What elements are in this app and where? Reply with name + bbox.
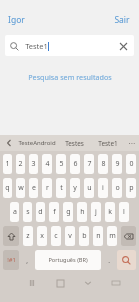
button[interactable]: w [16, 178, 25, 198]
button[interactable]: n [93, 226, 103, 246]
staticText: i [102, 183, 104, 193]
button[interactable]: t [56, 178, 66, 198]
button[interactable]: 8 [98, 154, 108, 174]
staticText: x [40, 231, 44, 241]
staticText: 9 [115, 159, 120, 169]
button[interactable]: Teste1 [91, 139, 125, 148]
button[interactable]: v [65, 226, 75, 246]
staticText: c [54, 231, 58, 241]
button[interactable]: g [63, 202, 73, 222]
button[interactable]: Previous suggestions [4, 138, 14, 148]
staticText: 1 [5, 159, 10, 169]
button[interactable]: 2 [16, 154, 25, 174]
button[interactable]: Recents [18, 274, 46, 292]
staticText: u [87, 183, 92, 193]
staticText: j [95, 207, 97, 217]
button[interactable]: o [112, 178, 122, 198]
button[interactable]: l [119, 202, 129, 222]
staticText: 8 [101, 159, 106, 169]
staticText: f [53, 207, 56, 217]
button[interactable]: Português (BR) [35, 250, 101, 270]
button[interactable]: Clear search [115, 38, 131, 54]
staticText: 7 [87, 159, 92, 169]
button[interactable]: q [3, 178, 12, 198]
button[interactable]: Teste1 [5, 35, 134, 56]
button[interactable]: a [10, 202, 19, 222]
staticText: v [68, 231, 72, 241]
button[interactable]: Backspace [121, 226, 136, 246]
button[interactable]: j [91, 202, 101, 222]
button[interactable]: p [126, 178, 136, 198]
staticText: , [26, 256, 28, 265]
button[interactable]: !#1 [3, 250, 19, 270]
staticText: m [109, 231, 116, 241]
button[interactable]: Sair [114, 14, 130, 26]
button[interactable]: f [49, 202, 59, 222]
staticText: 5 [59, 159, 64, 169]
button[interactable]: Hide keyboard [74, 274, 102, 292]
button[interactable]: Change keyboard [102, 274, 130, 292]
staticText: y [73, 183, 77, 193]
button[interactable]: Testes [57, 139, 91, 148]
staticText: . [108, 256, 110, 265]
staticText: Sair [114, 14, 130, 26]
staticText: e [32, 183, 36, 193]
staticText: Teste1 [25, 41, 48, 51]
button[interactable]: , [23, 250, 31, 270]
button[interactable]: 9 [112, 154, 122, 174]
button[interactable]: e [29, 178, 38, 198]
button[interactable]: 7 [84, 154, 94, 174]
button[interactable]: 5 [56, 154, 66, 174]
button[interactable]: y [70, 178, 80, 198]
staticText: 3 [31, 159, 36, 169]
button[interactable]: Search [117, 250, 136, 270]
staticText: Teste1 [98, 139, 118, 148]
button[interactable]: k [105, 202, 115, 222]
button[interactable]: i [98, 178, 108, 198]
button[interactable]: x [37, 226, 47, 246]
staticText: ⋯ [128, 139, 136, 148]
staticText: b [82, 231, 87, 241]
staticText: 2 [18, 159, 23, 169]
staticText: Português (BR) [48, 256, 88, 264]
button[interactable]: 6 [70, 154, 80, 174]
button[interactable]: Shift [3, 226, 19, 246]
staticText: o [115, 183, 120, 193]
button[interactable]: . [105, 250, 113, 270]
staticText: z [26, 231, 30, 241]
button[interactable]: 4 [42, 154, 52, 174]
button[interactable]: m [107, 226, 117, 246]
staticText: 0 [129, 159, 134, 169]
button[interactable]: Igor [8, 14, 25, 26]
staticText: h [80, 207, 85, 217]
staticText: a [13, 207, 17, 217]
button[interactable]: 3 [29, 154, 38, 174]
staticText: Pesquisa sem resultados [28, 72, 112, 82]
button[interactable]: u [84, 178, 94, 198]
staticText: Igor [8, 14, 25, 26]
staticText: 4 [45, 159, 50, 169]
staticText: r [46, 183, 49, 193]
staticText: d [38, 207, 43, 217]
button[interactable]: b [79, 226, 89, 246]
staticText: l [123, 207, 125, 217]
staticText: w [18, 183, 24, 193]
staticText: n [96, 231, 101, 241]
button[interactable]: h [77, 202, 87, 222]
staticText: 6 [73, 159, 78, 169]
staticText: !#1 [7, 256, 16, 264]
staticText: g [66, 207, 71, 217]
button[interactable]: r [42, 178, 52, 198]
button[interactable]: 0 [126, 154, 136, 174]
staticText: TesteAndroid [18, 139, 56, 147]
staticText: k [108, 207, 112, 217]
button[interactable]: TesteAndroid [16, 139, 57, 147]
button[interactable]: c [51, 226, 61, 246]
button[interactable]: More options [125, 139, 139, 148]
button[interactable]: z [23, 226, 33, 246]
button[interactable]: Home [46, 274, 74, 292]
button[interactable]: s [23, 202, 32, 222]
staticText: t [60, 183, 63, 193]
button[interactable]: 1 [3, 154, 12, 174]
button[interactable]: d [36, 202, 45, 222]
